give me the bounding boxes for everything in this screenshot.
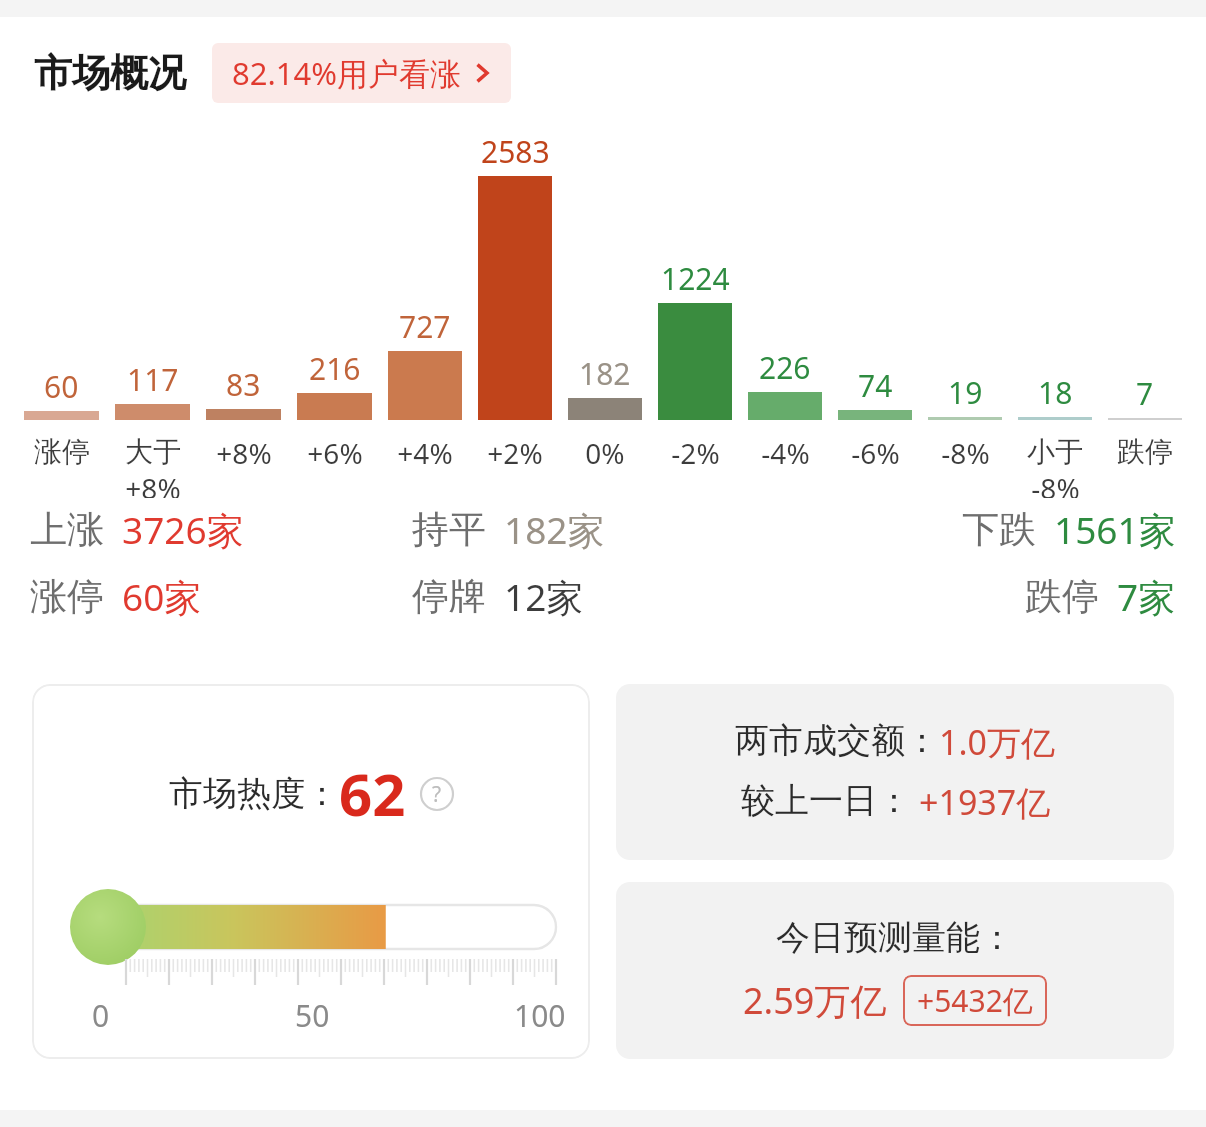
staticText: 小于 xyxy=(1027,434,1083,469)
staticText: 12家 xyxy=(504,571,584,622)
staticText: 226 xyxy=(759,347,811,388)
staticText: 市场概况 xyxy=(34,49,186,97)
staticText: 7 xyxy=(1136,373,1154,414)
staticText: 2.59万亿 xyxy=(743,976,887,1025)
staticText: 较上一日： xyxy=(741,779,911,822)
staticText: 1.0万亿 xyxy=(939,719,1056,765)
staticText: +8% xyxy=(216,434,272,472)
staticText: 涨停 xyxy=(30,573,104,620)
staticText: 117 xyxy=(127,359,179,400)
staticText: 100 xyxy=(514,995,566,1036)
staticText: 大于 xyxy=(125,434,181,469)
staticText: 上涨 xyxy=(30,506,104,553)
staticText: 60 xyxy=(44,366,79,407)
staticText: 83 xyxy=(226,364,261,405)
staticText: 82.14%用户看涨 xyxy=(232,52,461,94)
staticText: 727 xyxy=(399,306,451,347)
staticText: +6% xyxy=(307,434,363,472)
button[interactable]: 两市成交额： xyxy=(616,684,1174,860)
staticText: 跌停 xyxy=(1117,434,1173,469)
staticText: 涨停 xyxy=(34,434,90,469)
staticText: 3726家 xyxy=(122,504,244,555)
staticText: 停牌 xyxy=(412,573,486,620)
button[interactable]: 帮助 xyxy=(420,777,454,811)
staticText: 市场热度： xyxy=(169,772,339,815)
staticText: 182 xyxy=(579,353,631,394)
staticText: -8% xyxy=(941,434,990,472)
staticText: 2583 xyxy=(481,131,550,172)
staticText: 19 xyxy=(948,372,983,413)
staticText: -6% xyxy=(851,434,900,472)
staticText: 1561家 xyxy=(1054,504,1176,555)
staticText: 50 xyxy=(295,995,330,1036)
staticText: 0 xyxy=(92,995,110,1036)
staticText: 216 xyxy=(309,348,361,389)
button[interactable]: 市场热度： xyxy=(32,684,590,1059)
staticText: ? xyxy=(432,780,442,809)
staticText: 7家 xyxy=(1117,571,1176,622)
staticText: 62 xyxy=(339,754,406,833)
staticText: 两市成交额： xyxy=(735,719,939,762)
staticText: -4% xyxy=(761,434,810,472)
staticText: -2% xyxy=(671,434,720,472)
staticText: +4% xyxy=(397,434,453,472)
staticText: 今日预测量能： xyxy=(776,916,1014,959)
staticText: 1224 xyxy=(661,258,730,299)
staticText: +8% xyxy=(125,469,181,498)
staticText: +5432亿 xyxy=(917,980,1033,1021)
staticText: 0% xyxy=(585,434,625,472)
staticText: +2% xyxy=(487,434,543,472)
staticText: 60家 xyxy=(122,571,202,622)
staticText: +1937亿 xyxy=(919,779,1051,825)
staticText: 持平 xyxy=(412,506,486,553)
staticText: 74 xyxy=(858,365,893,406)
staticText: 下跌 xyxy=(962,506,1036,553)
button[interactable]: 82.14%用户看涨 xyxy=(212,43,511,103)
staticText: 18 xyxy=(1038,372,1073,413)
staticText: 182家 xyxy=(504,504,605,555)
staticText: -8% xyxy=(1031,469,1080,498)
staticText: 跌停 xyxy=(1025,573,1099,620)
button[interactable]: 今日预测量能： xyxy=(616,882,1174,1059)
